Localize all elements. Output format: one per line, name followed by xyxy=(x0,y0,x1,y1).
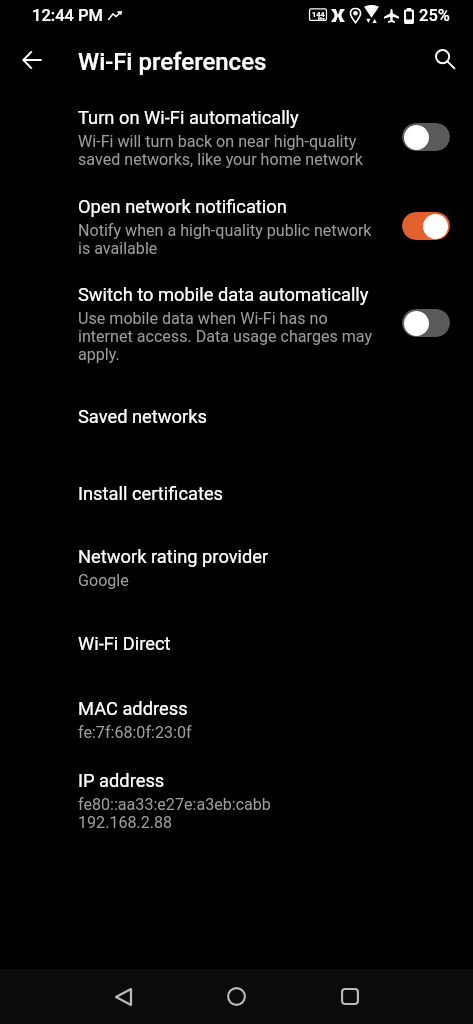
staticText: Wi-Fi Direct xyxy=(78,633,171,654)
button[interactable]: Navigate up xyxy=(12,40,52,80)
button[interactable]: Open network notification xyxy=(0,196,473,284)
staticText: Switch to mobile data automatically xyxy=(78,284,369,305)
staticText: 12:44 PM xyxy=(32,6,103,25)
staticText: Network rating provider xyxy=(78,546,269,567)
staticText: Open network notification xyxy=(78,196,287,217)
staticText: Wi-Fi will turn back on near high-qualit… xyxy=(78,132,363,169)
button[interactable]: Install certificates xyxy=(0,483,473,546)
staticText: Hz xyxy=(318,16,325,22)
button[interactable]: Switch to mobile data automatically xyxy=(0,284,473,406)
button[interactable]: Back xyxy=(99,969,147,1024)
button[interactable]: Network rating provider xyxy=(0,546,473,633)
staticText: Google xyxy=(78,571,129,590)
button[interactable]: Recent apps xyxy=(326,969,374,1024)
staticText: fe80::aa33:e27e:a3eb:cabb 192.168.2.88 xyxy=(78,795,271,832)
button[interactable]: On xyxy=(402,212,450,240)
button[interactable]: Saved networks xyxy=(0,406,473,483)
button[interactable]: Home xyxy=(212,969,260,1024)
staticText: 25% xyxy=(419,6,450,25)
staticText: Wi-Fi preferences xyxy=(78,48,267,76)
button[interactable]: Search xyxy=(425,39,465,79)
staticText: MAC address xyxy=(78,698,188,719)
staticText: fe:7f:68:0f:23:0f xyxy=(78,723,192,742)
button[interactable]: MAC address xyxy=(0,698,473,770)
staticText: IP address xyxy=(78,770,165,791)
button[interactable]: Off xyxy=(402,123,450,151)
staticText: Use mobile data when Wi-Fi has no intern… xyxy=(78,309,373,364)
staticText: Notify when a high-quality public networ… xyxy=(78,221,372,258)
staticText: Saved networks xyxy=(78,406,207,427)
button[interactable]: IP address xyxy=(0,770,473,850)
button[interactable]: Turn on Wi-Fi automatically xyxy=(0,107,473,196)
staticText: 144 xyxy=(312,10,325,19)
button[interactable]: Wi-Fi Direct xyxy=(0,633,473,697)
button[interactable]: Off xyxy=(402,309,450,337)
staticText: Install certificates xyxy=(78,483,224,504)
staticText: Turn on Wi-Fi automatically xyxy=(78,107,299,128)
